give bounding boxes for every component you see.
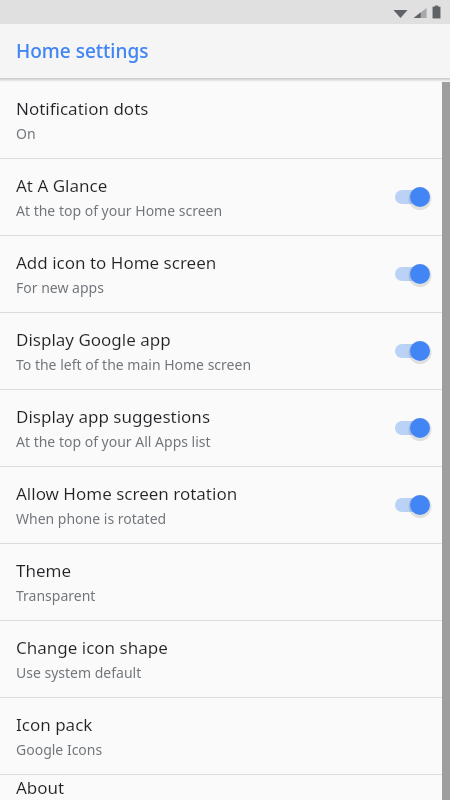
staticText: Add icon to Home screen: [16, 251, 217, 274]
button[interactable]: Toggle: [388, 179, 436, 215]
staticText: At A Glance: [16, 174, 108, 197]
button[interactable]: About: [0, 775, 450, 800]
staticText: At the top of your All Apps list: [16, 432, 211, 451]
button[interactable]: At A Glance: [0, 159, 450, 235]
staticText: To the left of the main Home screen: [16, 355, 252, 374]
button[interactable]: Allow Home screen rotation: [0, 467, 450, 543]
staticText: On: [16, 124, 36, 143]
button[interactable]: Display Google app: [0, 313, 450, 389]
staticText: Home settings: [16, 38, 149, 64]
button[interactable]: Toggle: [388, 256, 436, 292]
staticText: Theme: [16, 559, 72, 582]
button[interactable]: Theme: [0, 544, 450, 620]
staticText: About: [16, 776, 65, 799]
staticText: Transparent: [16, 586, 96, 605]
staticText: Change icon shape: [16, 636, 168, 659]
button[interactable]: Toggle: [388, 487, 436, 523]
button[interactable]: Add icon to Home screen: [0, 236, 450, 312]
staticText: When phone is rotated: [16, 509, 167, 528]
button[interactable]: Display app suggestions: [0, 390, 450, 466]
staticText: Notification dots: [16, 97, 149, 120]
button[interactable]: Notification dots: [0, 82, 450, 158]
staticText: Use system default: [16, 663, 142, 682]
button[interactable]: Icon pack: [0, 698, 450, 774]
staticText: For new apps: [16, 278, 104, 297]
button[interactable]: Change icon shape: [0, 621, 450, 697]
button[interactable]: Toggle: [388, 410, 436, 446]
staticText: At the top of your Home screen: [16, 201, 223, 220]
staticText: Icon pack: [16, 713, 93, 736]
staticText: Google Icons: [16, 740, 103, 759]
staticText: Display app suggestions: [16, 405, 211, 428]
button[interactable]: Toggle: [388, 333, 436, 369]
staticText: Display Google app: [16, 328, 171, 351]
staticText: Allow Home screen rotation: [16, 482, 238, 505]
